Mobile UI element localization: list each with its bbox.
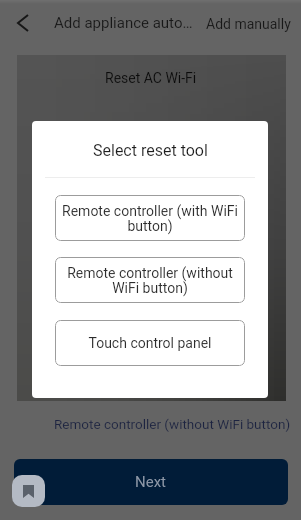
button[interactable]: Bookmark — [12, 475, 45, 507]
button[interactable]: Back — [0, 0, 42, 46]
staticText: Select reset tool — [93, 141, 208, 160]
staticText: Add manually — [206, 16, 291, 32]
staticText: Next — [135, 473, 167, 491]
button[interactable]: Add manually — [196, 4, 301, 44]
button[interactable]: Next — [14, 459, 288, 505]
staticText: Remote controller (with WiFi button) — [61, 203, 239, 234]
button[interactable]: Remote controller (with WiFi button) — [55, 195, 245, 241]
button[interactable]: Touch control panel — [55, 320, 245, 366]
staticText: Touch control panel — [88, 335, 212, 351]
button[interactable]: Remote controller (without WiFi button) — [55, 257, 245, 303]
staticText: Remote controller (without WiFi button) — [54, 416, 291, 432]
staticText: Remote controller (without WiFi button) — [61, 265, 239, 296]
staticText: Add appliance auto… — [54, 14, 193, 32]
staticText: Reset AC Wi-Fi — [105, 70, 197, 86]
